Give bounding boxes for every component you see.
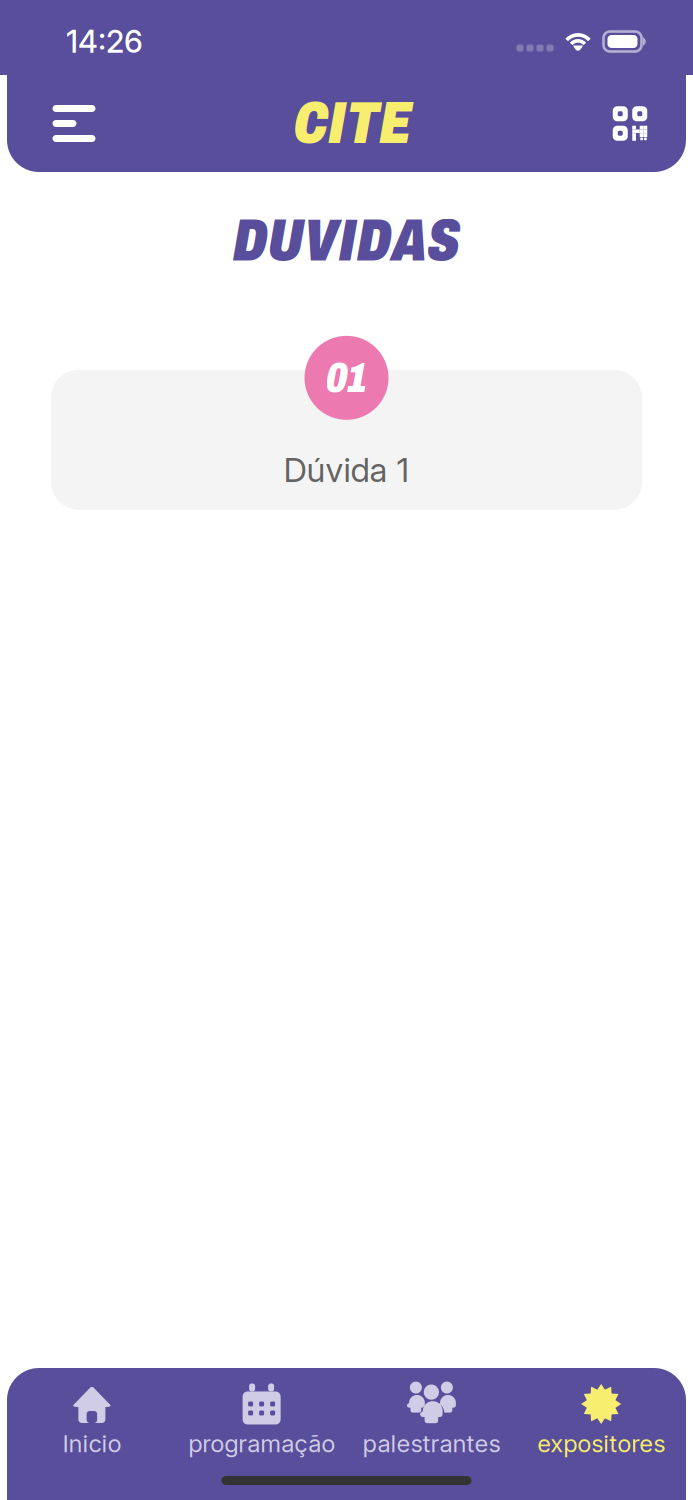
button[interactable]: Dúvida 1 (0, 336, 693, 510)
staticText: Inicio (62, 1429, 121, 1458)
staticText: programação (188, 1429, 335, 1458)
staticText: DUVIDAS (232, 209, 460, 273)
staticText: expositores (537, 1429, 665, 1458)
staticText: 14:26 (66, 23, 143, 60)
button[interactable]: Menu (46, 95, 102, 151)
staticText: palestrantes (362, 1429, 500, 1458)
button[interactable]: expositores (516, 1382, 686, 1460)
button[interactable]: Inicio (7, 1382, 177, 1460)
button[interactable]: programação (177, 1382, 347, 1460)
staticText: 01 (325, 355, 367, 401)
button[interactable]: Scan QR code (602, 95, 658, 151)
staticText: Dúvida 1 (283, 450, 409, 490)
button[interactable]: palestrantes (346, 1382, 516, 1460)
staticText: CITE (293, 92, 411, 155)
